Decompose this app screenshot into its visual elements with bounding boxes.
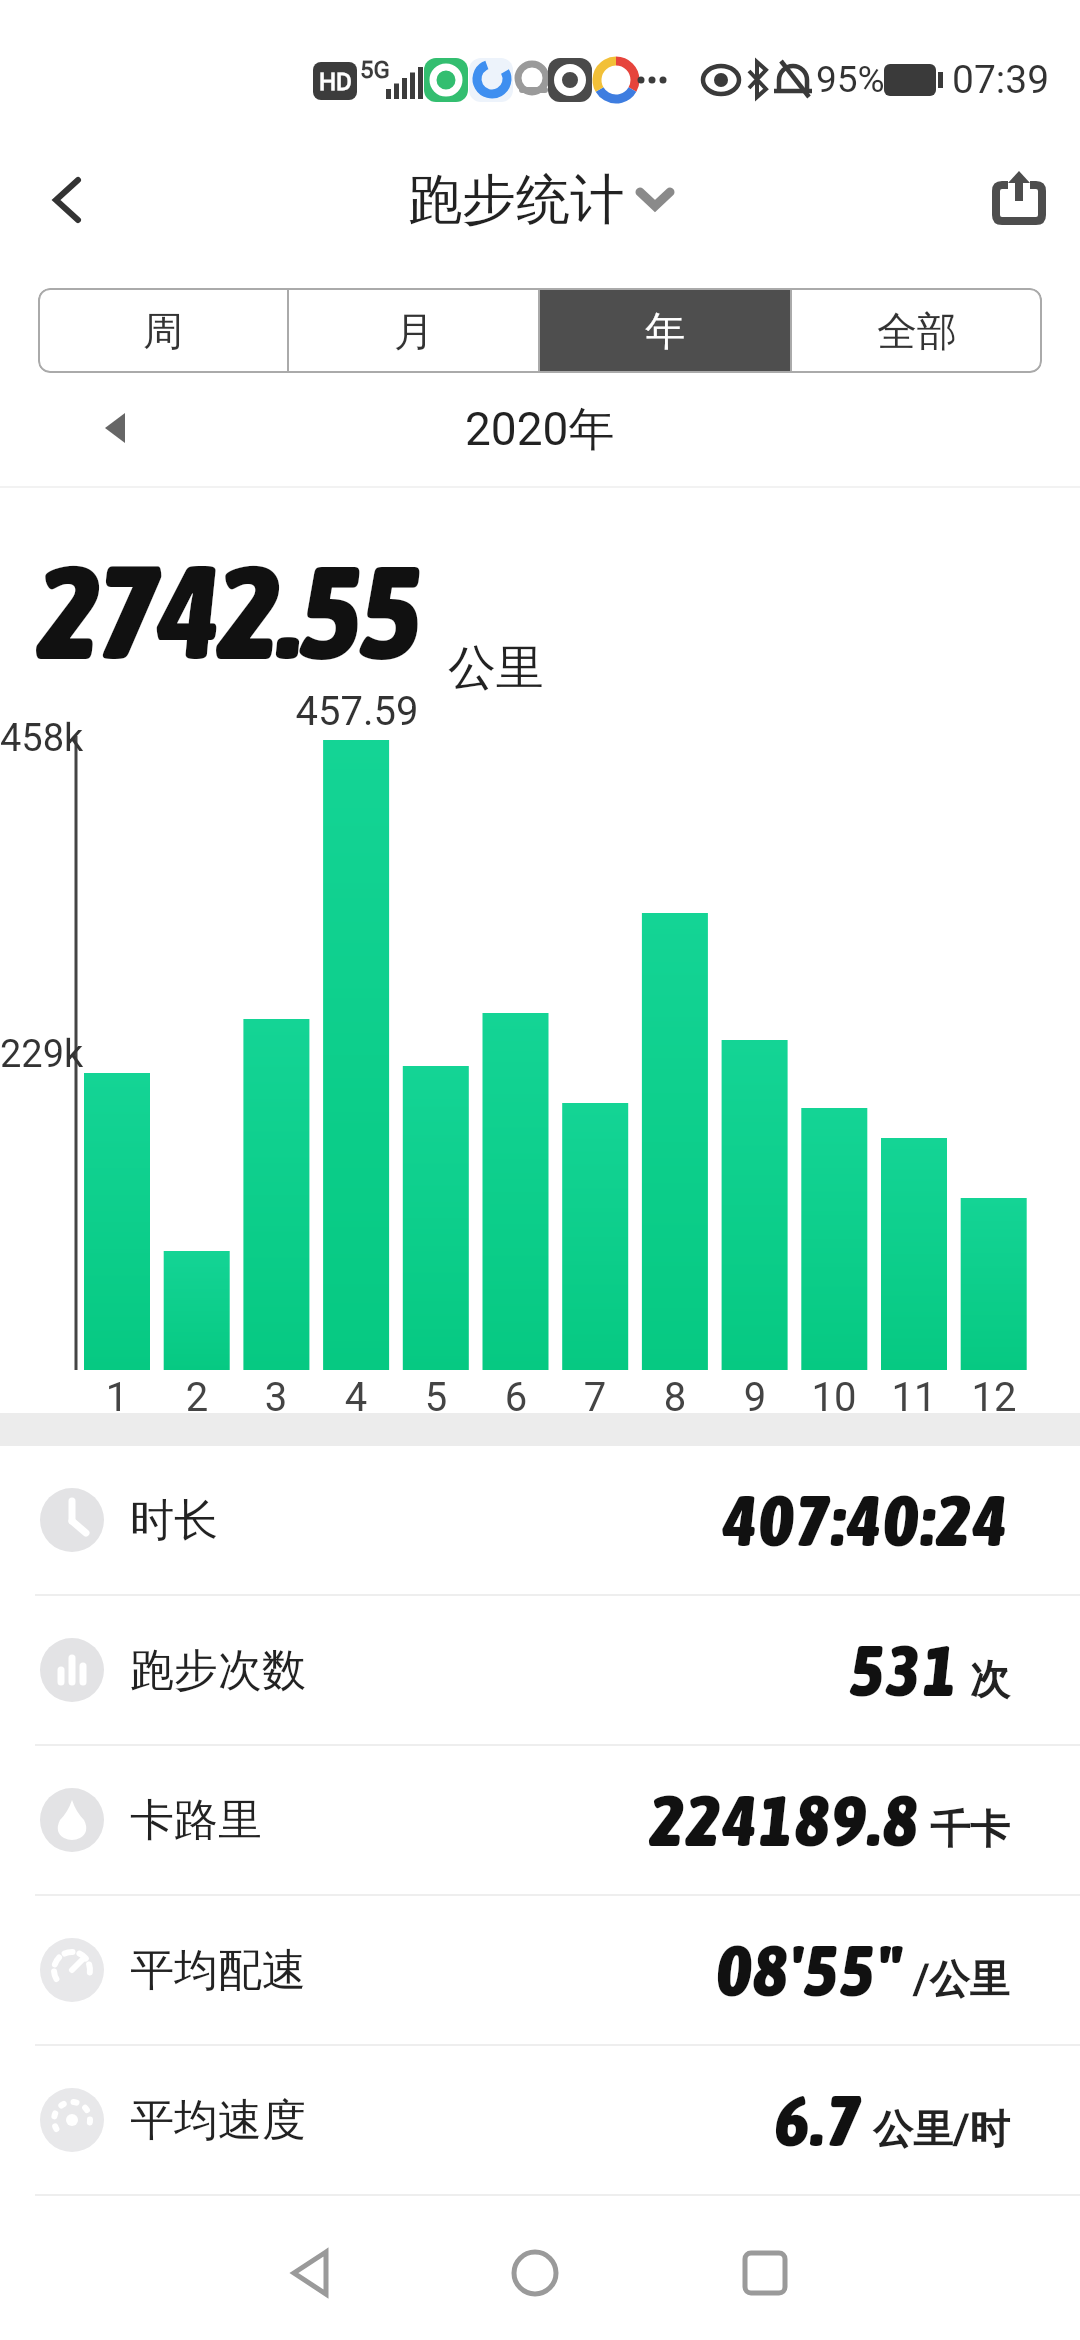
staticText: 531: [850, 1629, 960, 1712]
staticText: 458k: [0, 716, 84, 761]
staticText: 平均配速: [130, 1943, 306, 1998]
staticText: 407:40:24: [723, 1479, 1010, 1562]
staticText: 周: [143, 306, 183, 356]
staticText: 千卡: [930, 1804, 1010, 1854]
staticText: HD: [319, 68, 352, 96]
staticText: 时长: [130, 1493, 218, 1548]
staticText: 年: [645, 306, 685, 356]
button[interactable]: [975, 152, 1065, 242]
button[interactable]: [485, 2228, 585, 2318]
staticText: 次: [970, 1654, 1010, 1704]
staticText: 2742.55: [38, 536, 420, 687]
staticText: 5: [396, 1374, 476, 1421]
staticText: 10: [794, 1374, 874, 1421]
staticText: 6.7: [775, 2079, 863, 2162]
staticText: 224189.8: [650, 1779, 920, 1862]
button[interactable]: 周: [38, 288, 287, 373]
staticText: 跑步统计: [408, 166, 624, 234]
staticText: 1: [77, 1374, 157, 1421]
button[interactable]: 平均速度: [0, 2046, 1080, 2194]
button[interactable]: 卡路里: [0, 1746, 1080, 1894]
staticText: 11: [874, 1374, 954, 1421]
staticText: /公里: [913, 1954, 1010, 2004]
staticText: 6: [476, 1374, 556, 1421]
button[interactable]: 年: [540, 288, 790, 373]
button[interactable]: [28, 160, 108, 240]
staticText: 全部: [877, 306, 957, 356]
staticText: 07:39: [952, 57, 1050, 103]
staticText: 08'55": [717, 1929, 903, 2012]
staticText: 95%: [816, 58, 885, 101]
staticText: 月: [394, 306, 434, 356]
staticText: 229k: [0, 1032, 84, 1077]
staticText: 7: [555, 1374, 635, 1421]
staticText: 2: [157, 1374, 237, 1421]
staticText: 公里/时: [873, 2104, 1010, 2154]
button[interactable]: 平均配速: [0, 1896, 1080, 2044]
button[interactable]: [715, 2228, 815, 2318]
staticText: 4: [316, 1374, 396, 1421]
staticText: 卡路里: [130, 1793, 262, 1848]
staticText: 9: [715, 1374, 795, 1421]
staticText: 跑步次数: [130, 1643, 306, 1698]
button[interactable]: 月: [289, 288, 538, 373]
button[interactable]: 跑步次数: [0, 1596, 1080, 1744]
staticText: 公里: [448, 638, 544, 698]
staticText: 12: [954, 1374, 1034, 1421]
staticText: 平均速度: [130, 2093, 306, 2148]
staticText: 2020年: [465, 401, 615, 459]
staticText: 457.59: [277, 688, 437, 735]
staticText: 3: [236, 1374, 316, 1421]
staticText: 8: [635, 1374, 715, 1421]
staticText: 5G: [360, 56, 390, 84]
button[interactable]: 全部: [792, 288, 1042, 373]
button[interactable]: 时长: [0, 1446, 1080, 1594]
button[interactable]: [80, 393, 150, 463]
button[interactable]: [260, 2228, 360, 2318]
button[interactable]: 跑步统计: [408, 166, 672, 234]
